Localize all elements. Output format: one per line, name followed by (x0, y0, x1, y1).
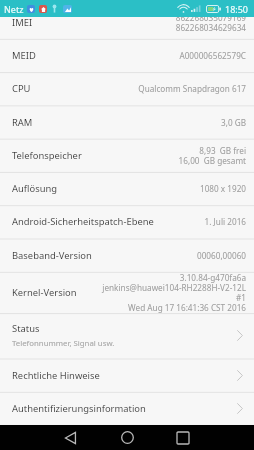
staticText: IMEI (12, 16, 33, 29)
button[interactable]: Android-Sicherheitspatch-Ebene (0, 205, 254, 238)
button[interactable]: Kernel-Version (0, 272, 254, 313)
staticText: Status (12, 322, 40, 335)
staticText: MEID (12, 49, 36, 62)
button[interactable]: CPU (0, 72, 254, 105)
staticText: Rechtliche Hinweise (12, 369, 100, 382)
button[interactable]: IMEI (0, 6, 254, 39)
staticText: 1080 x 1920 (199, 183, 246, 194)
button[interactable]: Baseband-Version (0, 239, 254, 272)
staticText: Qualcomm Snapdragon 617 (138, 83, 246, 94)
staticText: 3.10.84-g470fa6a jenkins@huawei104-RH228… (102, 272, 246, 313)
button[interactable]: Home (102, 425, 152, 450)
staticText: A000006562579C (179, 50, 246, 61)
staticText: Telefonnummer, Signal usw. (12, 338, 115, 349)
staticText: Baseband-Version (12, 249, 92, 262)
button[interactable]: RAM (0, 106, 254, 139)
staticText: 3,0 GB (221, 117, 246, 128)
staticText: 862268035079169 862268034629634 (175, 12, 246, 33)
staticText: Telefonspeicher (12, 149, 82, 162)
staticText: RAM (12, 116, 33, 129)
staticText: 8,93 GB frei 16,00 GB gesamt (178, 145, 246, 166)
button[interactable]: Rechtliche Hinweise (0, 359, 254, 392)
staticText: 18:50 (225, 3, 249, 15)
staticText: 00060,00060 (196, 250, 246, 261)
staticText: 1. Juli 2016 (204, 216, 246, 227)
button[interactable]: Status (0, 313, 254, 358)
button[interactable]: Recent apps (158, 425, 208, 450)
staticText: Netz (4, 3, 24, 15)
button[interactable]: Telefonspeicher (0, 139, 254, 172)
staticText: Android-Sicherheitspatch-Ebene (12, 215, 154, 228)
button[interactable]: Authentifizierungsinformation (0, 392, 254, 425)
staticText: Kernel-Version (12, 286, 77, 299)
button[interactable]: Back (45, 425, 95, 450)
button[interactable]: MEID (0, 39, 254, 72)
staticText: Authentifizierungsinformation (12, 402, 146, 415)
staticText: Auflösung (12, 182, 58, 195)
button[interactable]: Auflösung (0, 172, 254, 205)
staticText: CPU (12, 82, 31, 95)
